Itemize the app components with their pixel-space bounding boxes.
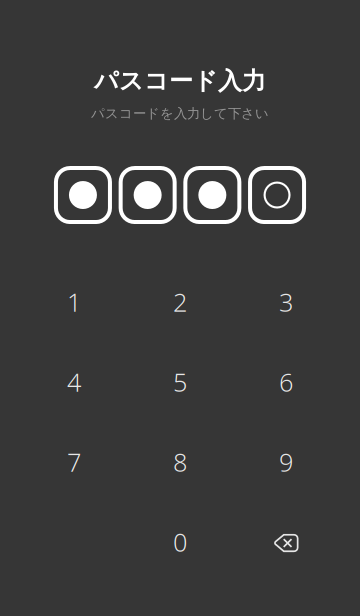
button[interactable]: 1: [21, 262, 127, 342]
staticText: 6: [279, 365, 293, 399]
button[interactable]: 7: [21, 422, 127, 502]
button[interactable]: 5: [127, 342, 233, 422]
staticText: 5: [173, 365, 187, 399]
staticText: 7: [67, 445, 81, 479]
staticText: パスコード入力: [94, 66, 266, 96]
button[interactable]: 6: [233, 342, 339, 422]
button[interactable]: 2: [127, 262, 233, 342]
staticText: 0: [173, 525, 187, 559]
button[interactable]: 8: [127, 422, 233, 502]
staticText: 4: [67, 365, 81, 399]
button[interactable]: 3: [233, 262, 339, 342]
button[interactable]: Delete: [233, 502, 339, 582]
staticText: 8: [173, 445, 187, 479]
staticText: 2: [173, 285, 187, 319]
staticText: パスコードを入力して下さい: [91, 105, 269, 122]
staticText: 3: [279, 285, 293, 319]
button[interactable]: 9: [233, 422, 339, 502]
button[interactable]: 4: [21, 342, 127, 422]
staticText: 9: [279, 445, 293, 479]
button[interactable]: 0: [127, 502, 233, 582]
staticText: 1: [67, 285, 81, 319]
